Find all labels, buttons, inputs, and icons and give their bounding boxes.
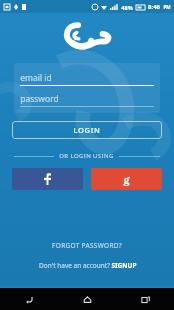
- button[interactable]: Don't have an account?: [32, 259, 143, 272]
- staticText: 8:46: [148, 3, 160, 11]
- staticText: 48%: [121, 4, 133, 11]
- staticText: LOGIN: [73, 125, 101, 135]
- staticText: FORGOT PASSWORD?: [52, 241, 122, 250]
- button[interactable]: FORGOT PASSWORD?: [46, 239, 128, 252]
- button[interactable]: Recents: [116, 288, 174, 310]
- button[interactable]: Back: [0, 288, 58, 310]
- button[interactable]: Login with Google: [91, 168, 162, 190]
- staticText: OR LOGIN USING: [59, 152, 114, 160]
- staticText: SIGNUP: [111, 261, 137, 270]
- staticText: email id: [20, 72, 52, 84]
- button[interactable]: password: [20, 88, 154, 109]
- button[interactable]: email id: [20, 67, 154, 88]
- staticText: PM: [163, 4, 171, 10]
- staticText: Don't have an account?: [38, 261, 111, 270]
- staticText: password: [20, 93, 59, 105]
- button[interactable]: LOGIN: [12, 121, 162, 139]
- button[interactable]: Login with Facebook: [12, 168, 83, 190]
- staticText: g: [123, 172, 130, 187]
- button[interactable]: Home: [58, 288, 116, 310]
